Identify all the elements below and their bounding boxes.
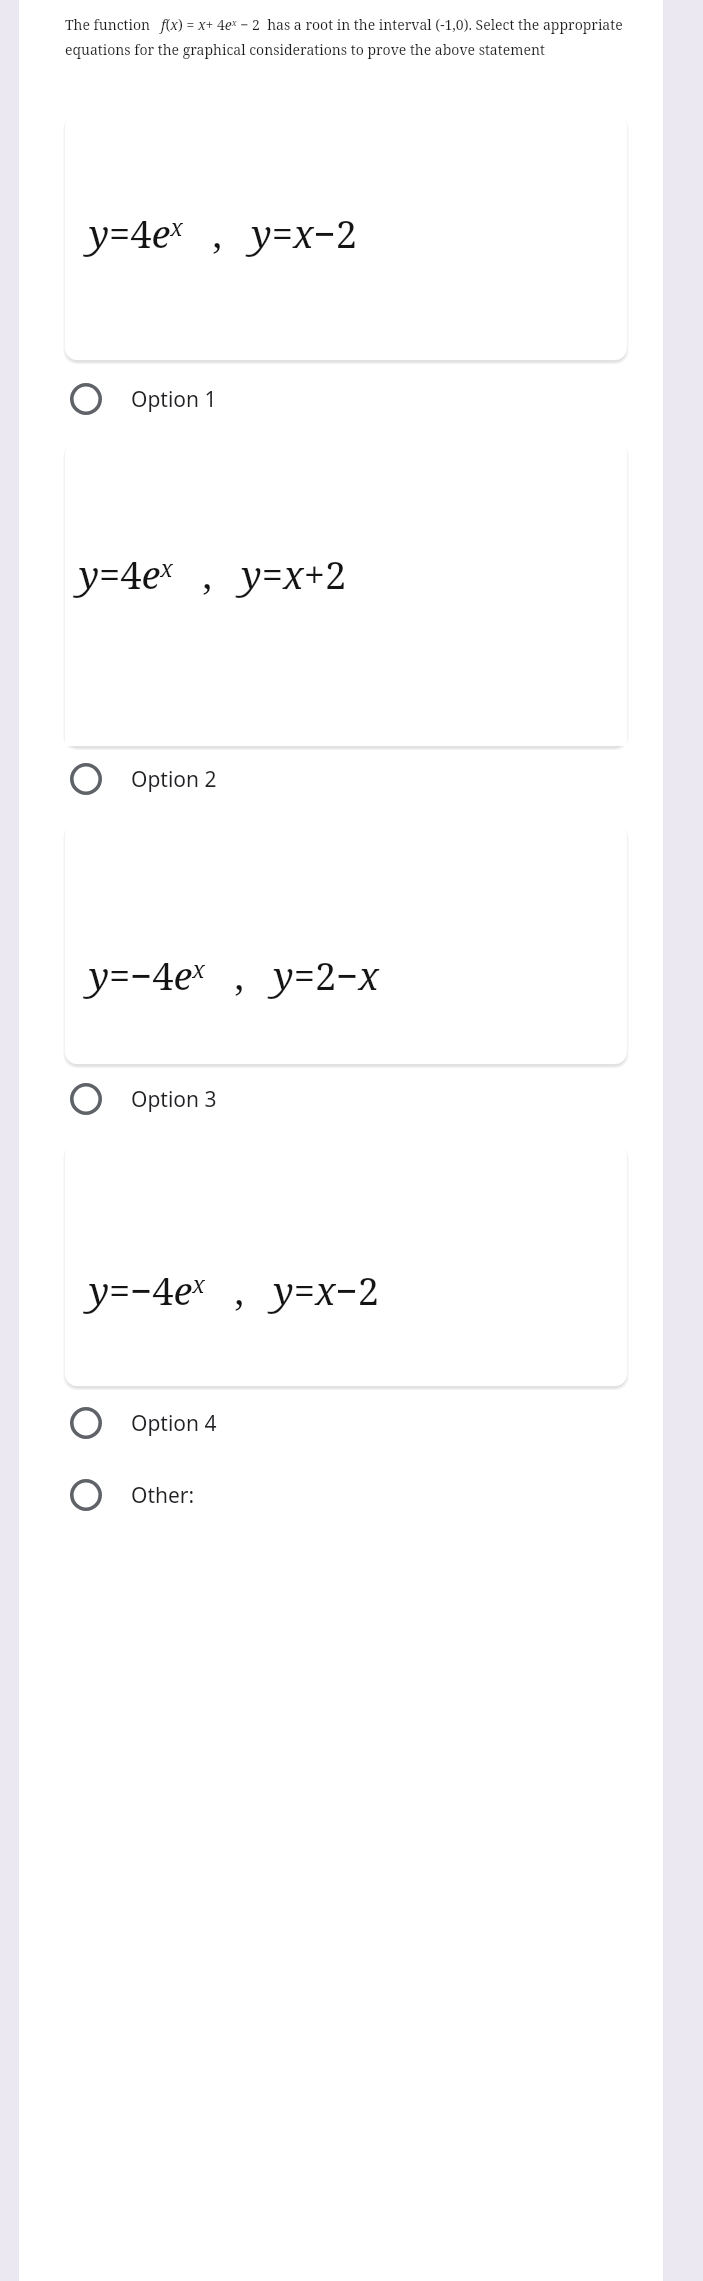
button[interactable]: y=−4ex , y=x−2 bbox=[65, 1144, 627, 1386]
button[interactable]: Other: bbox=[19, 1464, 663, 1526]
staticText: y=4ex , y=x+2 bbox=[79, 548, 347, 600]
staticText: y=4ex , y=x−2 bbox=[89, 207, 357, 259]
staticText: y=−4ex , y=2−x bbox=[89, 949, 379, 1001]
staticText: Option 4 bbox=[131, 1409, 217, 1438]
staticText: Option 2 bbox=[131, 765, 217, 794]
button[interactable]: y=−4ex , y=2−x bbox=[65, 824, 627, 1064]
button[interactable]: Option 2 bbox=[19, 748, 663, 810]
button[interactable]: y=4ex , y=x−2 bbox=[65, 115, 627, 360]
button[interactable]: y=4ex , y=x+2 bbox=[65, 442, 627, 746]
staticText: The function f(x) = x+ 4ex − 2 has a roo… bbox=[65, 15, 659, 59]
staticText: y=−4ex , y=x−2 bbox=[89, 1264, 379, 1316]
staticText: Other: bbox=[131, 1481, 195, 1510]
staticText: Option 3 bbox=[131, 1085, 217, 1114]
button[interactable]: Option 4 bbox=[19, 1392, 663, 1454]
staticText: Option 1 bbox=[131, 385, 217, 414]
button[interactable]: Option 3 bbox=[19, 1068, 663, 1130]
button[interactable]: Option 1 bbox=[19, 368, 663, 430]
